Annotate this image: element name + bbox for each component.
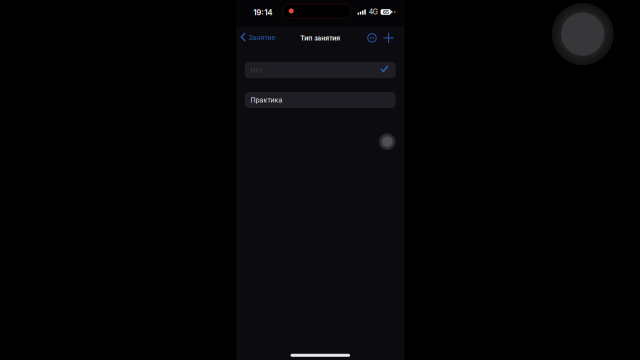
button[interactable]: Remove — [363, 29, 380, 46]
staticText: Нет — [251, 66, 263, 74]
button[interactable]: Занятие — [237, 27, 278, 47]
staticText: 65 — [383, 9, 389, 15]
staticText: 19:14 — [253, 8, 272, 17]
button[interactable]: Нет — [245, 62, 396, 78]
button[interactable]: Add — [379, 29, 398, 47]
staticText: Практика — [251, 96, 283, 104]
staticText: 4G — [369, 8, 378, 16]
staticText: Тип занятия — [300, 34, 340, 42]
staticText: Занятие — [248, 34, 275, 41]
button[interactable]: Практика — [245, 92, 396, 108]
